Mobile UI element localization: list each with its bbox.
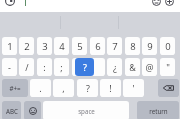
button[interactable]: ! (100, 79, 121, 97)
staticText: #+= (9, 84, 21, 92)
button[interactable]: ? (77, 79, 98, 97)
button[interactable]: space (43, 101, 129, 119)
button[interactable]: 2 (19, 37, 34, 55)
button[interactable]: 7 (107, 37, 122, 55)
button[interactable]: 9 (142, 37, 157, 55)
button[interactable]: Emoji (152, 0, 161, 6)
staticText: / (25, 61, 29, 73)
staticText: ' (132, 82, 135, 94)
staticText: ABC (6, 107, 18, 115)
staticText: 9 (147, 40, 153, 53)
button[interactable] (72, 58, 87, 76)
button[interactable]: 4 (54, 37, 69, 55)
staticText: - (8, 61, 11, 73)
staticText: 7 (112, 40, 118, 53)
button[interactable]: 5 (72, 37, 87, 55)
button[interactable] (90, 58, 105, 76)
button[interactable]: ' (123, 79, 144, 97)
button[interactable]: Mute microphone (5, 0, 15, 6)
button[interactable]: 6 (90, 37, 105, 55)
staticText: 3 (42, 40, 48, 53)
button[interactable]: @ (142, 58, 157, 76)
button[interactable]: Add attachment (165, 0, 174, 6)
button[interactable]: & (125, 58, 140, 76)
button[interactable]: #+= (2, 79, 28, 97)
button[interactable]: 3 (37, 37, 52, 55)
staticText: space (78, 107, 95, 115)
button[interactable]: return (137, 101, 179, 119)
staticText: . (39, 82, 42, 94)
button[interactable]: ¿ (107, 58, 122, 76)
button[interactable]: 0 (160, 37, 175, 55)
button[interactable]: 8 (125, 37, 140, 55)
button[interactable]: . (30, 79, 51, 97)
button[interactable]: Switch keyboard (24, 101, 41, 119)
button[interactable]: " (160, 58, 175, 76)
staticText: ¿ (113, 61, 117, 73)
button[interactable]: Backspace (158, 79, 179, 97)
button[interactable]: ? (75, 58, 94, 76)
button[interactable]: / (19, 58, 34, 76)
staticText: @ (145, 61, 154, 73)
staticText: 5 (77, 40, 83, 53)
button[interactable]: - (2, 58, 17, 76)
staticText: : (43, 61, 46, 73)
staticText: " (166, 61, 170, 73)
button[interactable]: : (37, 58, 52, 76)
staticText: return (149, 107, 168, 115)
staticText: , (62, 82, 65, 94)
staticText: 6 (95, 40, 101, 53)
staticText: 2 (24, 40, 30, 53)
button[interactable]: ABC (2, 101, 21, 119)
button[interactable]: , (53, 79, 74, 97)
staticText: ; (60, 61, 63, 73)
staticText: 1 (7, 40, 13, 53)
staticText: 4 (59, 40, 65, 53)
button[interactable]: ; (54, 58, 69, 76)
staticText: 8 (130, 40, 136, 53)
staticText: ? (83, 61, 87, 73)
staticText: 0 (165, 40, 171, 53)
staticText: ? (86, 82, 90, 94)
staticText: ! (109, 82, 112, 94)
button[interactable]: 1 (2, 37, 17, 55)
staticText: & (129, 61, 136, 73)
